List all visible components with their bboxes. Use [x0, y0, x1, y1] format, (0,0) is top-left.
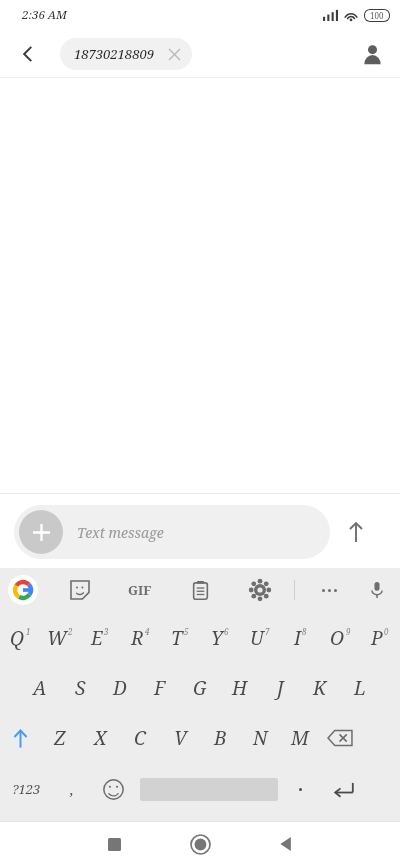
button[interactable]: Enter [322, 763, 366, 815]
staticText: U [250, 625, 264, 651]
button[interactable]: Z [40, 713, 80, 763]
staticText: 2:36 AM [22, 7, 67, 23]
staticText: 100 [370, 10, 384, 21]
staticText: 3 [104, 626, 109, 637]
staticText: 4 [145, 626, 150, 637]
staticText: T [171, 625, 183, 651]
button[interactable]: Add attachment [14, 505, 330, 559]
button[interactable]: Y [200, 613, 240, 663]
button[interactable]: O [320, 613, 360, 663]
staticText: Y [211, 625, 223, 651]
button[interactable]: Backspace [320, 713, 360, 763]
button[interactable]: R [120, 613, 160, 663]
staticText: , [70, 779, 74, 799]
button[interactable]: M [280, 713, 320, 763]
staticText: 1 [26, 626, 31, 637]
button[interactable]: Emoji [92, 763, 134, 815]
staticText: P [371, 625, 383, 651]
button[interactable]: V [160, 713, 200, 763]
staticText: 6 [224, 626, 229, 637]
staticText: Z [54, 725, 66, 751]
staticText: 7 [265, 626, 270, 637]
staticText: 9 [346, 626, 351, 637]
button[interactable]: A [20, 663, 60, 713]
button[interactable]: P [360, 613, 400, 663]
staticText: J [277, 675, 284, 701]
button[interactable]: L [340, 663, 380, 713]
staticText: O [330, 625, 345, 651]
staticText: Text message [77, 523, 164, 542]
staticText: Q [10, 625, 25, 651]
staticText: L [354, 675, 366, 701]
button[interactable] [278, 763, 322, 815]
staticText: S [75, 675, 86, 701]
button[interactable]: U [240, 613, 280, 663]
button[interactable]: GIF [120, 570, 160, 610]
staticText: GIF [128, 581, 152, 599]
staticText: A [33, 675, 47, 701]
button[interactable]: Send [330, 506, 382, 558]
button[interactable]: B [200, 713, 240, 763]
button[interactable]: K [300, 663, 340, 713]
staticText: H [232, 675, 248, 701]
button[interactable]: Settings [240, 570, 280, 610]
staticText: V [174, 725, 187, 751]
button[interactable]: Back [260, 822, 312, 866]
staticText: C [134, 725, 146, 751]
staticText: N [253, 725, 268, 751]
button[interactable]: Contacts [352, 34, 392, 74]
button[interactable]: G [180, 663, 220, 713]
button[interactable]: Shift [0, 713, 40, 763]
button[interactable]: Clipboard [180, 570, 220, 610]
staticText: D [113, 675, 127, 701]
staticText: R [131, 625, 144, 651]
staticText: E [91, 625, 103, 651]
button[interactable]: J [260, 663, 300, 713]
button[interactable]: S [60, 663, 100, 713]
button[interactable]: X [80, 713, 120, 763]
button[interactable]: Remove recipient [164, 44, 184, 64]
button[interactable]: N [240, 713, 280, 763]
staticText: M [291, 725, 309, 751]
button[interactable]: I [280, 613, 320, 663]
staticText: ?123 [12, 780, 41, 798]
staticText: 8 [302, 626, 307, 637]
button[interactable]: , [52, 763, 92, 815]
button[interactable]: Voice input [357, 570, 397, 610]
staticText: W [47, 625, 67, 651]
button[interactable]: Back [10, 36, 46, 72]
staticText: B [214, 725, 227, 751]
button[interactable]: Q [0, 613, 40, 663]
button[interactable]: T [160, 613, 200, 663]
staticText: K [313, 675, 327, 701]
button[interactable]: H [220, 663, 260, 713]
button[interactable]: Recent apps [88, 822, 140, 866]
button[interactable]: More options [309, 570, 349, 610]
staticText: 5 [184, 626, 189, 637]
staticText: X [94, 725, 107, 751]
staticText: 18730218809 [74, 45, 154, 63]
staticText: 2 [68, 626, 73, 637]
button[interactable]: Home [174, 822, 226, 866]
button[interactable]: Add attachment [19, 510, 63, 554]
button[interactable]: E [80, 613, 120, 663]
button[interactable]: Google search [8, 575, 38, 605]
button[interactable]: Stickers [60, 570, 100, 610]
staticText: 0 [384, 626, 389, 637]
button[interactable]: 18730218809 [60, 38, 192, 70]
button[interactable]: F [140, 663, 180, 713]
button[interactable]: ?123 [0, 763, 52, 815]
staticText: I [294, 625, 301, 651]
staticText: F [154, 675, 166, 701]
staticText: G [193, 675, 207, 701]
button[interactable]: D [100, 663, 140, 713]
button[interactable]: W [40, 613, 80, 663]
button[interactable]: C [120, 713, 160, 763]
